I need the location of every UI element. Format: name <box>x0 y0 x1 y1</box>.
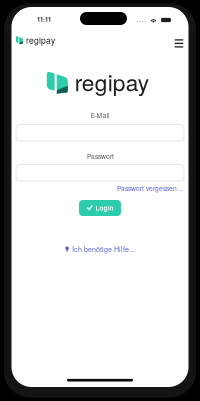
staticText: regipay <box>75 65 149 98</box>
button[interactable]: Menu <box>171 36 187 50</box>
button[interactable]: Login <box>79 200 121 216</box>
staticText: 11:11 <box>37 15 51 24</box>
button[interactable]: Ich benötige Hilfe... <box>64 244 135 254</box>
staticText: Passwort <box>87 151 114 161</box>
button[interactable]: Passwort vergessen... <box>117 183 183 193</box>
staticText: Passwort vergessen... <box>117 183 183 193</box>
staticText: Ich benötige Hilfe... <box>72 244 135 254</box>
button[interactable]: regipay <box>16 34 55 46</box>
staticText: regipay <box>26 34 55 46</box>
staticText: E-Mail <box>90 110 108 120</box>
staticText: Login <box>95 204 113 212</box>
